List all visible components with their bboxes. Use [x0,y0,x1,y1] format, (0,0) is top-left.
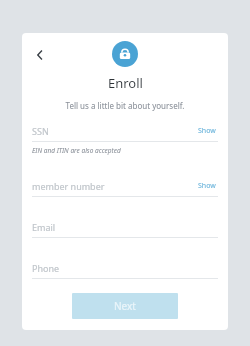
staticText: Tell us a little bit about yourself. [65,100,185,111]
staticText: Email [32,221,56,233]
button[interactable]: Phone [32,262,218,279]
staticText: EIN and ITIN are also accepted [32,146,121,155]
button[interactable]: member number [32,180,218,197]
staticText: Enroll [108,74,143,92]
staticText: member number [32,180,105,192]
button[interactable]: SSN [32,125,218,142]
button[interactable]: Email [32,221,218,238]
button[interactable]: Next [72,293,178,319]
button[interactable]: Show [196,180,218,192]
button[interactable]: Show [196,125,218,137]
staticText: Next [114,299,136,313]
button[interactable]: Back [26,41,54,69]
staticText: Show [198,126,216,136]
staticText: SSN [32,125,49,137]
staticText: Show [198,181,216,191]
staticText: Phone [32,262,60,274]
